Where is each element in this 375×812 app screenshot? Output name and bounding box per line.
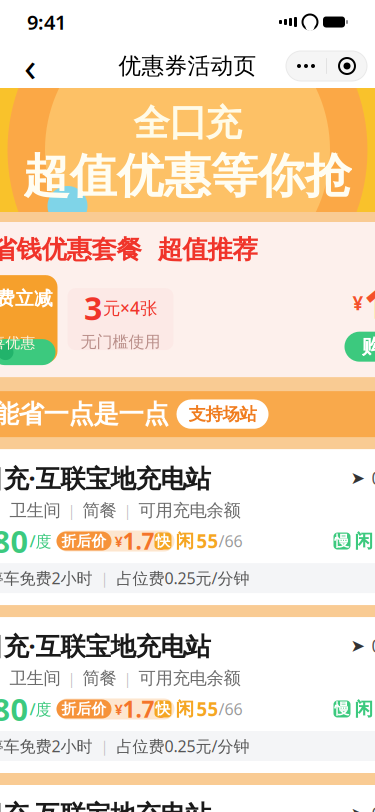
- staticText: ¥: [114, 699, 122, 719]
- staticText: 折后价: [61, 532, 106, 550]
- staticText: |: [100, 736, 108, 756]
- staticText: 无门槛使用: [80, 332, 160, 352]
- staticText: 快: [155, 532, 170, 550]
- staticText: /66: [218, 698, 242, 720]
- staticText: ➤: [350, 468, 365, 488]
- staticText: 1.80: [0, 689, 28, 729]
- staticText: 0.1km: [371, 634, 375, 657]
- staticText: ➤: [350, 804, 365, 812]
- staticText: 优惠券活动页: [118, 52, 256, 80]
- staticText: 支持场站: [188, 403, 256, 425]
- button[interactable]: 关闭: [327, 51, 367, 81]
- button[interactable]: 全日充·互联宝地充电站: [0, 785, 375, 812]
- button[interactable]: 返回: [8, 44, 52, 88]
- staticText: ¥: [114, 531, 122, 551]
- staticText: 闲: [175, 530, 194, 552]
- button[interactable]: 全日充·互联宝地充电站: [0, 617, 375, 773]
- staticText: ➤: [350, 636, 365, 656]
- staticText: 卫生间: [9, 500, 60, 521]
- staticText: 服务费立减券: [0, 287, 53, 333]
- staticText: 1.80: [0, 521, 28, 561]
- staticText: 9:41: [27, 9, 66, 35]
- staticText: 购买: [361, 334, 375, 359]
- staticText: 闲: [354, 530, 373, 552]
- staticText: 元×4张: [103, 296, 157, 319]
- staticText: |: [67, 501, 75, 520]
- staticText: 全日充·互联宝地充电站: [0, 629, 210, 663]
- staticText: 超值优惠等你抢: [23, 147, 352, 205]
- staticText: 0.1km: [371, 802, 375, 812]
- staticText: 可用充电余额: [138, 500, 240, 521]
- staticText: 卫生间: [9, 668, 60, 689]
- staticText: 简餐: [82, 668, 116, 689]
- button[interactable]: 购买: [344, 332, 375, 362]
- staticText: 闲: [175, 697, 194, 720]
- staticText: 能省一点是一点: [0, 399, 168, 430]
- staticText: 1.70: [122, 526, 167, 556]
- staticText: ¥: [352, 291, 363, 315]
- staticText: 折后价: [61, 700, 106, 718]
- staticText: |: [123, 501, 131, 520]
- staticText: 0.1km: [371, 466, 375, 489]
- staticText: 占位费0.25元/分钟: [116, 735, 249, 757]
- staticText: 占位费0.25元/分钟: [116, 567, 249, 589]
- staticText: 慢: [334, 700, 349, 718]
- staticText: 简餐: [82, 500, 116, 521]
- button[interactable]: 全日充·互联宝地充电站: [0, 449, 375, 605]
- staticText: /度: [29, 530, 51, 552]
- staticText: /66: [218, 530, 242, 552]
- staticText: 快: [155, 700, 170, 718]
- staticText: 3: [84, 286, 102, 329]
- staticText: 55: [196, 529, 218, 553]
- staticText: 全日充·互联宝地充电站: [0, 797, 210, 812]
- staticText: 停车免费2小时: [0, 735, 92, 757]
- button[interactable]: 支持场站: [176, 399, 268, 429]
- staticText: 慢: [334, 532, 349, 550]
- staticText: 全日充·互联宝地充电站: [0, 461, 210, 495]
- staticText: 10: [364, 277, 375, 330]
- staticText: |: [67, 669, 75, 688]
- staticText: 1.70: [122, 694, 167, 724]
- staticText: 可用充电余额: [138, 668, 240, 689]
- staticText: |: [100, 568, 108, 588]
- staticText: 闲: [354, 697, 373, 720]
- staticText: 省钱优惠套餐 超值推荐: [0, 234, 257, 265]
- staticText: 停车免费2小时: [0, 567, 92, 589]
- staticText: 惊喜优惠: [0, 334, 35, 352]
- staticText: 全囗充: [133, 101, 241, 145]
- staticText: ‹: [24, 39, 36, 92]
- staticText: |: [123, 669, 131, 688]
- staticText: /度: [29, 698, 51, 720]
- staticText: 55: [196, 697, 218, 721]
- button[interactable]: 更多: [286, 51, 326, 81]
